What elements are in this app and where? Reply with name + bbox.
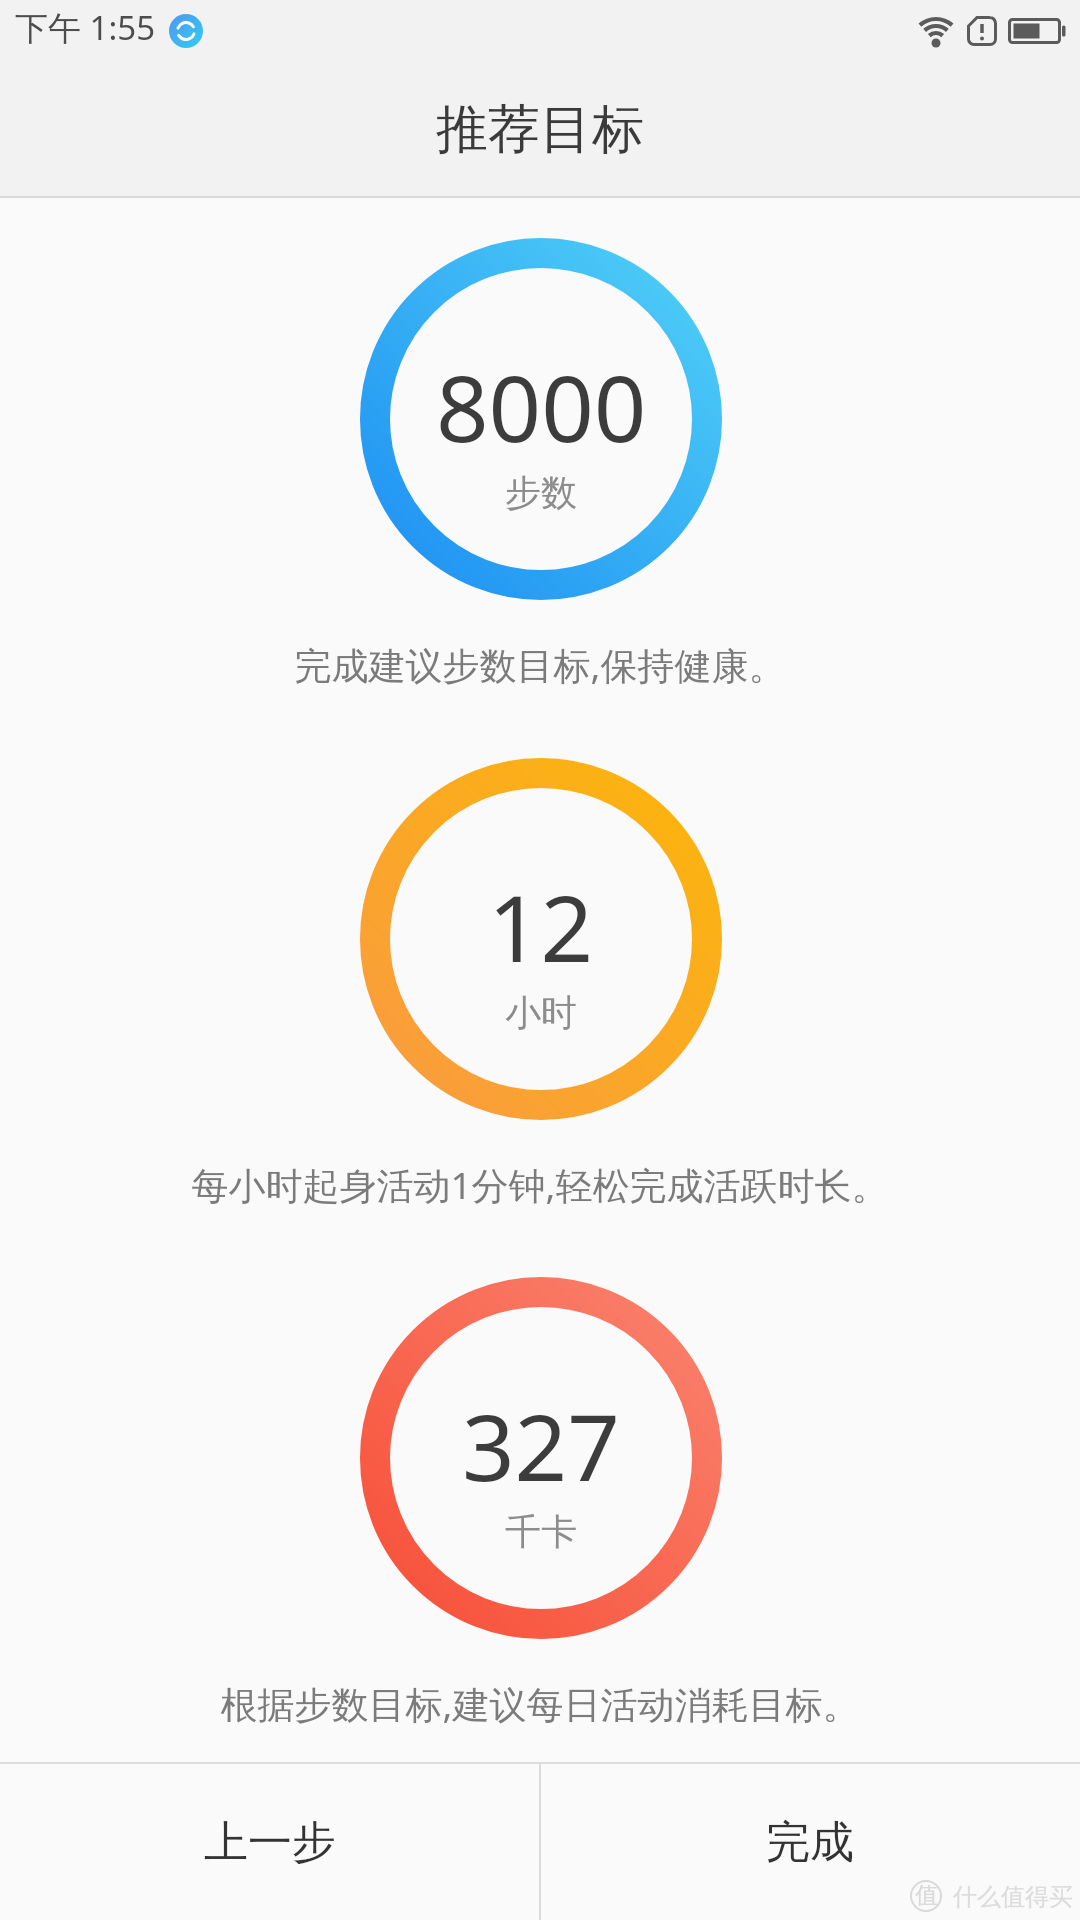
- staticText: 12: [488, 864, 594, 989]
- staticText: 步数: [505, 470, 577, 515]
- staticText: 下午 1:55: [15, 5, 156, 50]
- staticText: 小时: [505, 990, 577, 1035]
- staticText: 每小时起身活动1分钟,轻松完成活跃时长。: [0, 1159, 1080, 1210]
- staticText: 8000: [436, 344, 647, 469]
- staticText: 上一步: [204, 1815, 336, 1870]
- staticText: 千卡: [505, 1509, 577, 1554]
- staticText: 327: [462, 1383, 620, 1508]
- staticText: 完成建议步数目标,保持健康。: [0, 639, 1080, 690]
- staticText: 完成: [766, 1815, 854, 1870]
- button[interactable]: 上一步: [0, 1764, 540, 1920]
- staticText: 值: [915, 1881, 938, 1910]
- staticText: 什么值得买: [953, 1882, 1073, 1912]
- button[interactable]: 完成: [540, 1764, 1080, 1920]
- staticText: 根据步数目标,建议每日活动消耗目标。: [0, 1678, 1080, 1729]
- staticText: 推荐目标: [436, 97, 644, 163]
